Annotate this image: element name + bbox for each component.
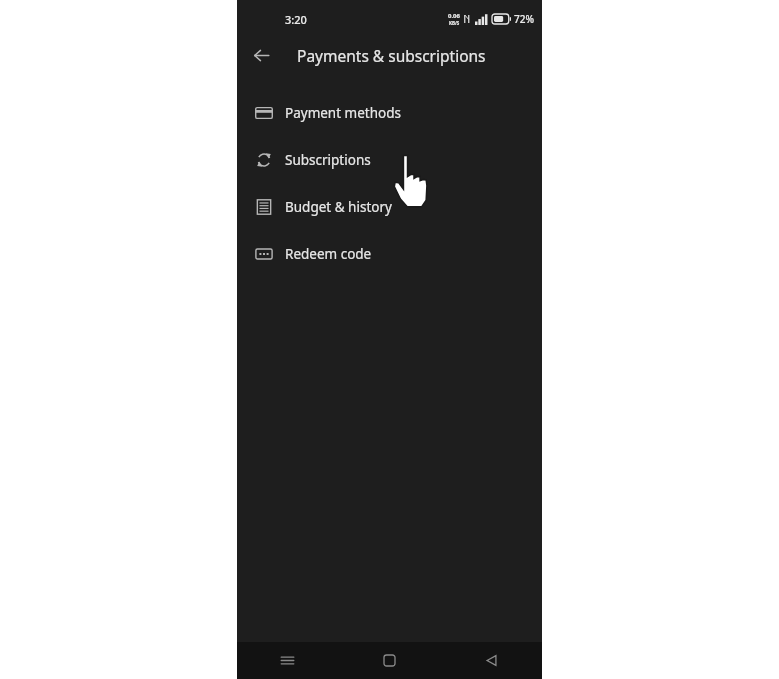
staticText: 0.06 bbox=[448, 12, 460, 20]
staticText: Subscriptions bbox=[285, 151, 371, 169]
staticText: KB/S bbox=[449, 20, 460, 26]
button[interactable]: Subscriptions bbox=[237, 136, 542, 183]
staticText: Budget & history bbox=[285, 198, 392, 216]
button[interactable]: Back bbox=[247, 41, 275, 69]
staticText: Redeem code bbox=[285, 245, 372, 263]
button[interactable]: Payment methods bbox=[237, 89, 542, 136]
button[interactable]: Home bbox=[338, 642, 440, 679]
button[interactable]: Redeem code bbox=[237, 230, 542, 277]
button[interactable]: Recents bbox=[237, 642, 338, 679]
staticText: Payments & subscriptions bbox=[297, 45, 486, 66]
button[interactable]: Budget & history bbox=[237, 183, 542, 230]
button[interactable]: Back bbox=[440, 642, 542, 679]
staticText: 3:20 bbox=[285, 12, 307, 27]
staticText: Payment methods bbox=[285, 104, 401, 122]
staticText: 72% bbox=[514, 12, 534, 26]
